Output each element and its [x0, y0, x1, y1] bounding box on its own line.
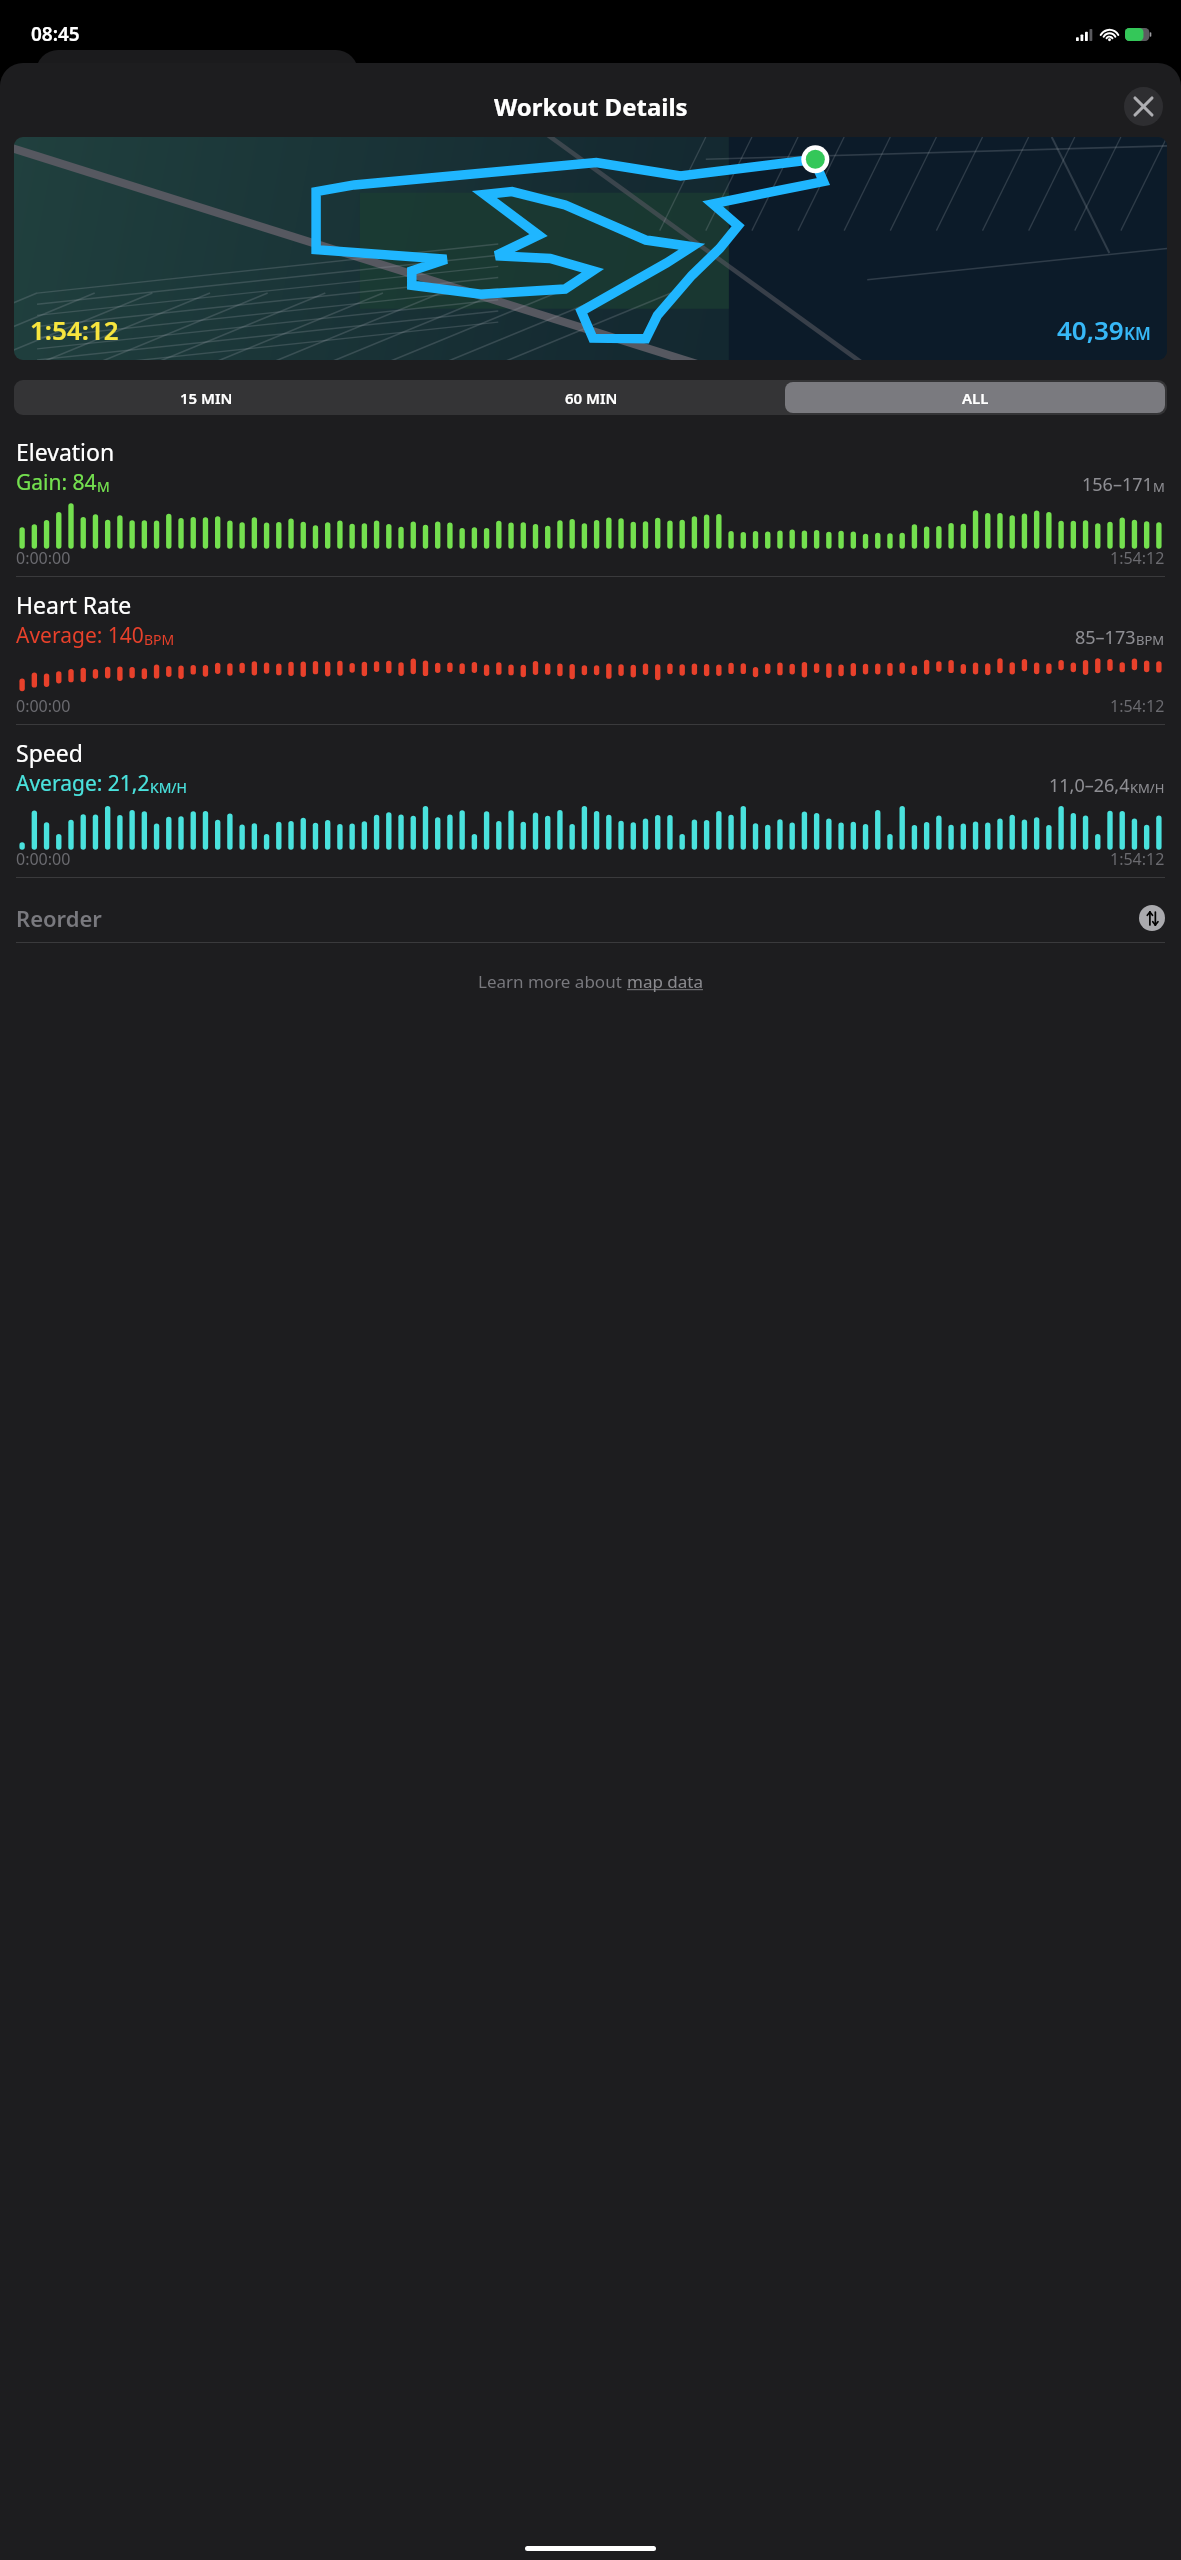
staticText: Gain: 84 — [16, 468, 97, 497]
staticText: 1:54:12 — [1110, 695, 1165, 717]
other: Reorder — [1139, 905, 1165, 931]
staticText: 11,0–26,4 — [1049, 773, 1130, 798]
staticText: Reorder — [16, 903, 102, 933]
staticText: M — [1153, 478, 1165, 496]
staticText: 08:45 — [31, 21, 80, 47]
staticText: BPM — [1136, 631, 1165, 649]
staticText: 40,39 — [1057, 312, 1124, 347]
staticText: Average: 21,2 — [16, 769, 150, 798]
staticText: Average: 140 — [16, 621, 144, 650]
staticText: 0:00:00 — [16, 695, 71, 717]
staticText: ALL — [962, 388, 989, 408]
staticText: 60 MIN — [565, 388, 618, 408]
button[interactable]: ALL — [785, 382, 1165, 413]
button[interactable]: map data — [627, 970, 703, 993]
staticText: 15 MIN — [180, 388, 233, 408]
staticText: KM/H — [150, 778, 187, 797]
staticText: Heart Rate — [16, 589, 132, 620]
staticText: KM — [1124, 322, 1151, 345]
staticText: Learn more about — [478, 970, 627, 993]
staticText: 0:00:00 — [16, 848, 71, 870]
staticText: M — [97, 477, 110, 496]
staticText: 0:00:00 — [16, 547, 71, 569]
staticText: Speed — [16, 737, 83, 768]
button[interactable]: 15 MIN — [16, 382, 397, 413]
staticText: 1:54:12 — [1110, 547, 1165, 569]
staticText: 85–173 — [1075, 625, 1136, 650]
staticText: BPM — [144, 630, 175, 649]
staticText: 1:54:12 — [1110, 848, 1165, 870]
button[interactable]: Close — [1124, 87, 1163, 126]
staticText: 156–171 — [1082, 472, 1153, 497]
staticText: Workout Details — [494, 90, 688, 123]
button[interactable]: Reorder — [0, 894, 1181, 942]
staticText: KM/H — [1130, 779, 1165, 797]
staticText: Elevation — [16, 436, 115, 467]
button[interactable]: 60 MIN — [401, 382, 781, 413]
staticText: 1:54:12 — [30, 312, 119, 347]
